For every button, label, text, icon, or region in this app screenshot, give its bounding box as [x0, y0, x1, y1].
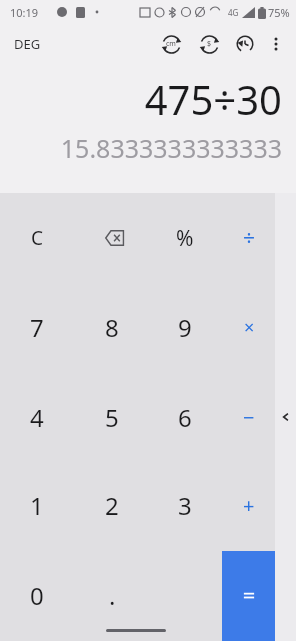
button[interactable]: .	[79, 565, 145, 625]
button[interactable]: C	[4, 208, 70, 268]
button[interactable]: ×	[216, 297, 282, 357]
button[interactable]: Open panel	[275, 193, 296, 641]
staticText: 10:19	[10, 5, 39, 20]
staticText: −	[243, 404, 255, 431]
staticText: 3	[178, 489, 192, 522]
staticText: ×	[244, 315, 255, 340]
staticText: 0	[30, 579, 44, 612]
button[interactable]: 4	[4, 387, 70, 447]
button[interactable]	[222, 551, 275, 641]
button[interactable]: DEG	[14, 35, 41, 53]
staticText: 75%	[268, 5, 290, 20]
staticText: 1	[30, 489, 44, 522]
staticText: ÷	[243, 224, 256, 253]
button[interactable]: +	[216, 475, 282, 535]
staticText: 4G	[228, 7, 239, 18]
button[interactable]: 9	[152, 297, 218, 357]
staticText: +	[243, 492, 255, 519]
button[interactable]: 2	[79, 475, 145, 535]
staticText: 15.8333333333333	[60, 131, 282, 165]
staticText: 4	[30, 401, 44, 434]
button[interactable]: 6	[152, 387, 218, 447]
button[interactable]: Currency converter	[190, 25, 228, 63]
staticText: 6	[178, 401, 192, 434]
staticText: C	[31, 225, 44, 251]
button[interactable]: Backspace	[79, 208, 145, 268]
staticText: cm	[166, 39, 176, 49]
button[interactable]: 7	[4, 297, 70, 357]
staticText: 7	[30, 311, 44, 344]
button[interactable]: %	[152, 208, 218, 268]
staticText: %	[176, 224, 194, 253]
staticText: .	[109, 579, 116, 612]
staticText: 8	[105, 311, 119, 344]
staticText: 475÷30	[144, 72, 282, 126]
staticText: 2	[105, 489, 119, 522]
staticText: $	[207, 39, 212, 49]
button[interactable]: 3	[152, 475, 218, 535]
button[interactable]: ÷	[216, 208, 282, 268]
button[interactable]: 8	[79, 297, 145, 357]
staticText: 9	[178, 311, 192, 344]
button[interactable]: 5	[79, 387, 145, 447]
button[interactable]: Unit converter	[152, 25, 190, 63]
button[interactable]: −	[216, 387, 282, 447]
button[interactable]: 1	[4, 475, 70, 535]
button[interactable]: More options	[262, 27, 290, 61]
button[interactable]: 0	[4, 565, 70, 625]
staticText: DEG	[14, 35, 41, 53]
button[interactable]: History	[228, 27, 262, 61]
staticText: 5	[105, 401, 119, 434]
